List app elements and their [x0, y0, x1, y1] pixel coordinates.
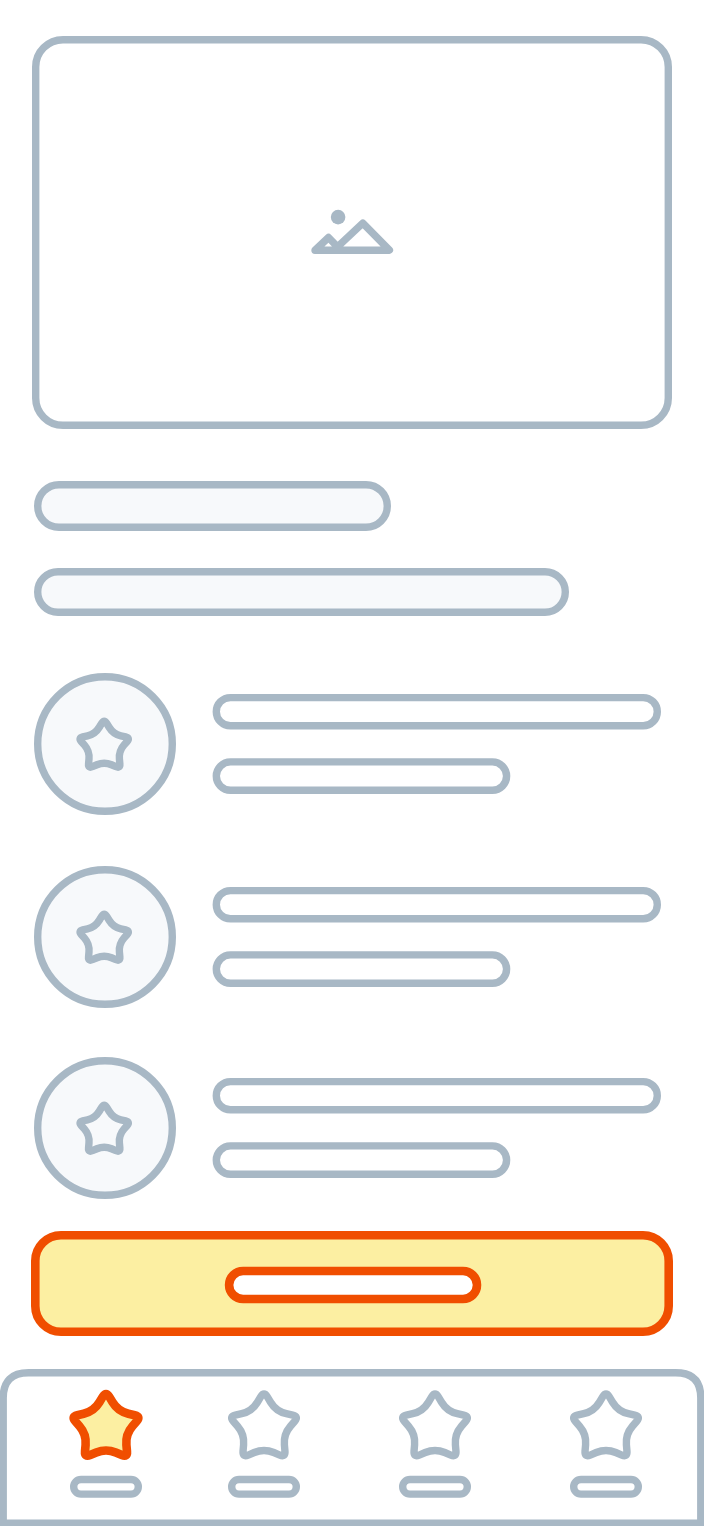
button[interactable]: Selected item [31, 1231, 673, 1336]
button[interactable]: Home [58, 1377, 154, 1517]
button[interactable]: Favourites [387, 1377, 483, 1517]
button[interactable]: Search [216, 1377, 312, 1517]
button[interactable]: Profile [558, 1377, 654, 1517]
button[interactable]: List item 1 [0, 673, 704, 815]
button[interactable]: Title [34, 481, 391, 531]
button[interactable]: List item 2 [0, 866, 704, 1008]
button[interactable]: List item 3 [0, 1057, 704, 1199]
button[interactable]: Subtitle [34, 568, 569, 616]
button[interactable]: Image placeholder [32, 36, 672, 429]
